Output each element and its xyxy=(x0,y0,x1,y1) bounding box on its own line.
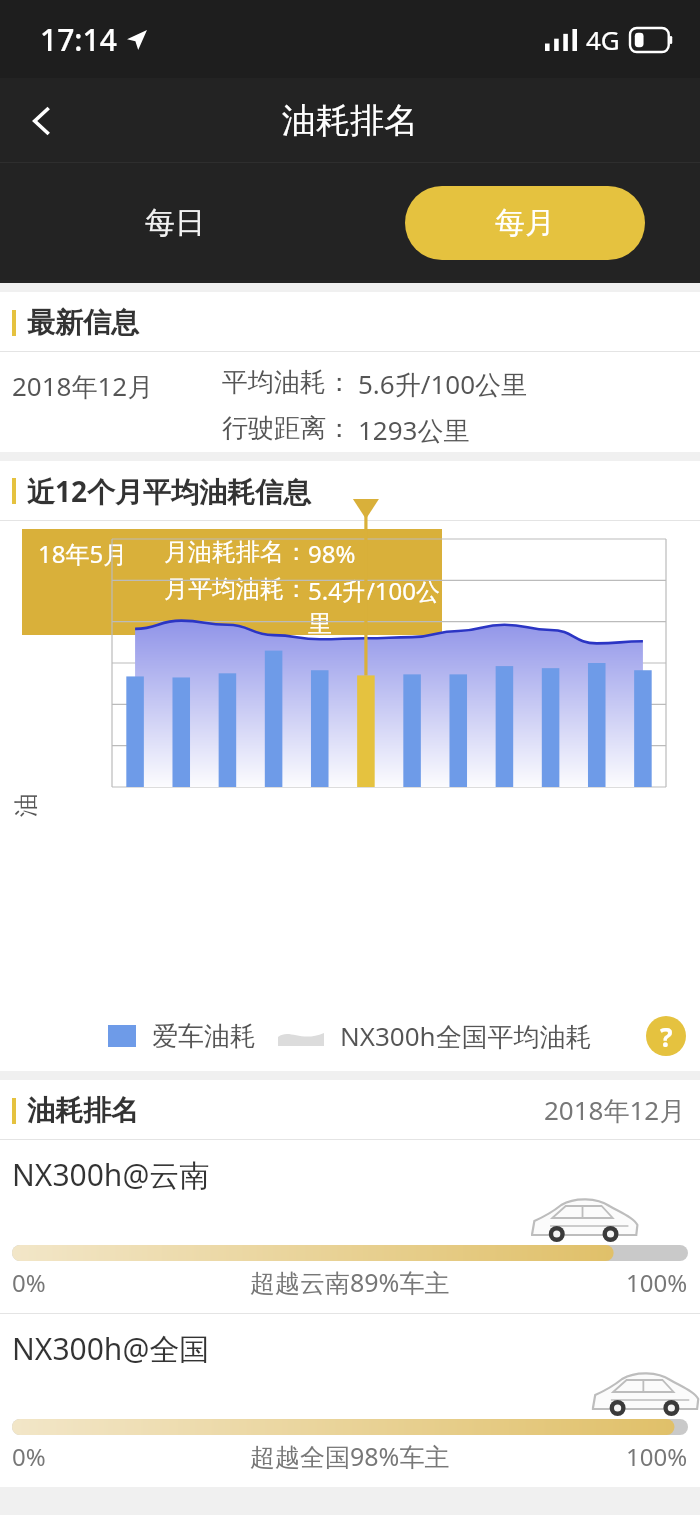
staticText: 18年5月 xyxy=(38,537,128,570)
button[interactable]: NX300h@云南 xyxy=(0,1140,700,1313)
staticText: 油耗(升/100公里) xyxy=(11,777,41,817)
staticText: NX300h@全国 xyxy=(12,1328,210,1369)
staticText: 平均油耗： xyxy=(222,366,352,399)
staticText: 0% xyxy=(12,1266,46,1299)
staticText: 100% xyxy=(626,1266,688,1299)
button[interactable]: 每月 xyxy=(405,186,645,260)
staticText: NX300h全国平均油耗 xyxy=(340,1018,592,1054)
staticText: 油耗排名 xyxy=(27,1093,139,1128)
staticText: 17:14 xyxy=(40,19,117,60)
staticText: 5.4升/100公里 xyxy=(308,574,442,635)
staticText: ? xyxy=(660,1019,673,1054)
staticText: 油耗排名 xyxy=(282,99,418,142)
staticText: 月平均油耗： xyxy=(164,574,308,604)
button[interactable]: 每日 xyxy=(0,163,350,283)
button[interactable]: Help xyxy=(646,1016,686,1056)
staticText: 5.6升/100公里 xyxy=(358,366,528,402)
button[interactable]: Back xyxy=(12,90,74,152)
staticText: 爱车油耗 xyxy=(152,1020,256,1053)
staticText: 100% xyxy=(626,1440,688,1473)
staticText: 0% xyxy=(12,1440,46,1473)
staticText: 2018年12月 xyxy=(12,368,154,404)
staticText: 最新信息 xyxy=(27,305,139,340)
staticText: 月油耗排名： xyxy=(164,537,308,567)
staticText: 4G xyxy=(586,22,620,57)
staticText: 超越全国98%车主 xyxy=(250,1439,450,1473)
staticText: 超越云南89%车主 xyxy=(250,1265,450,1299)
staticText: 行驶距离： xyxy=(222,412,352,445)
button[interactable]: NX300h@全国 xyxy=(0,1314,700,1487)
staticText: 98% xyxy=(308,537,356,570)
staticText: 1293公里 xyxy=(358,412,470,448)
staticText: 2018年12月 xyxy=(544,1092,686,1128)
staticText: 每日 xyxy=(145,204,205,242)
staticText: 近12个月平均油耗信息 xyxy=(27,472,312,510)
staticText: NX300h@云南 xyxy=(12,1154,210,1195)
staticText: 每月 xyxy=(495,204,555,242)
